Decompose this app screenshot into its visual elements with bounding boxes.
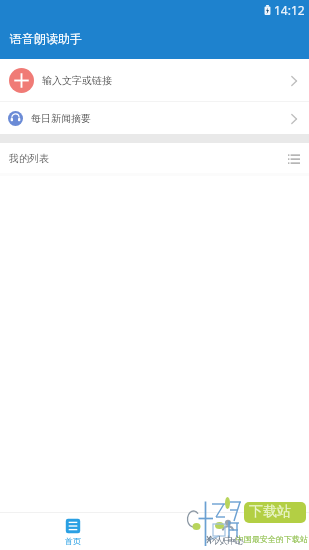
staticText: 首页 [65, 536, 81, 546]
staticText: 语音朗读助手 [10, 31, 82, 46]
staticText: 我的列表 [9, 152, 49, 165]
button[interactable]: 输入文字或链接 [0, 59, 309, 101]
staticText: 下载站 [249, 503, 291, 521]
button[interactable]: 个人中心 [150, 513, 305, 550]
button[interactable]: 每日新闻摘要 [0, 102, 309, 134]
button[interactable]: 首页 [0, 513, 150, 550]
button[interactable]: 我的列表 [0, 143, 309, 173]
staticText: 个人中心 [212, 536, 244, 546]
staticText: 每日新闻摘要 [31, 112, 91, 125]
staticText: 14:12 [274, 2, 305, 18]
staticText: 个人中心 [206, 534, 242, 545]
staticText: 输入文字或链接 [42, 74, 112, 87]
staticText: 中国最安全的下载站 [236, 534, 308, 544]
button[interactable]: Sort my list [282, 146, 306, 170]
